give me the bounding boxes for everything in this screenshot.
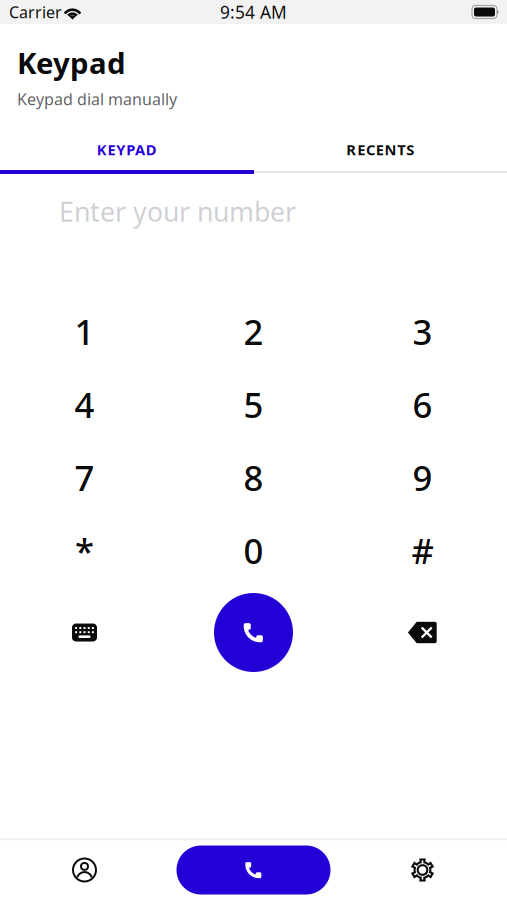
staticText: 9:54 AM [220, 0, 287, 23]
staticText: 0 [243, 527, 263, 573]
staticText: 5 [243, 381, 263, 427]
button[interactable]: Settings [338, 840, 507, 899]
staticText: KEYPAD [97, 140, 157, 159]
button[interactable]: Contacts [0, 840, 169, 899]
staticText: 9 [412, 454, 432, 500]
staticText: Keypad [17, 43, 126, 82]
button[interactable]: 3 [338, 295, 507, 368]
staticText: * [75, 527, 94, 573]
staticText: 7 [74, 454, 94, 500]
button[interactable]: Delete [338, 587, 507, 678]
button[interactable]: Keypad [169, 840, 338, 899]
button[interactable]: Call [169, 587, 338, 678]
staticText: Carrier [9, 1, 62, 23]
staticText: 6 [412, 381, 432, 427]
staticText: RECENTS [346, 140, 414, 159]
button[interactable]: # [338, 514, 507, 587]
button[interactable]: * [0, 514, 169, 587]
button[interactable]: 6 [338, 368, 507, 441]
button[interactable]: 5 [169, 368, 338, 441]
button[interactable]: 8 [169, 441, 338, 514]
button[interactable]: 4 [0, 368, 169, 441]
staticText: Keypad dial manually [17, 88, 177, 110]
button[interactable]: Keyboard [0, 587, 169, 678]
button[interactable]: 0 [169, 514, 338, 587]
staticText: 4 [74, 381, 94, 427]
button[interactable]: 9 [338, 441, 507, 514]
staticText: 1 [74, 308, 94, 354]
staticText: # [411, 527, 433, 573]
button[interactable]: KEYPAD [0, 136, 253, 163]
button[interactable]: 1 [0, 295, 169, 368]
staticText: 2 [243, 308, 263, 354]
button[interactable]: 2 [169, 295, 338, 368]
button[interactable]: RECENTS [253, 136, 507, 163]
staticText: 8 [243, 454, 263, 500]
button[interactable]: 7 [0, 441, 169, 514]
staticText: Enter your number [59, 194, 296, 229]
staticText: 3 [412, 308, 432, 354]
